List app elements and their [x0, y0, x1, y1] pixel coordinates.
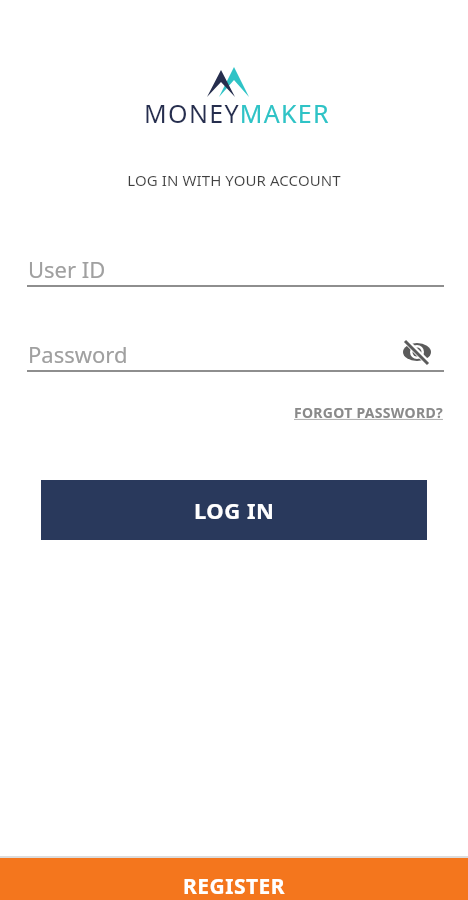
- staticText: Password: [28, 339, 128, 369]
- button[interactable]: FORGOT PASSWORD?: [0, 403, 468, 422]
- staticText: FORGOT PASSWORD?: [294, 403, 443, 422]
- button[interactable]: LOG IN: [41, 480, 427, 540]
- staticText: REGISTER: [183, 872, 286, 900]
- button[interactable]: REGISTER: [0, 858, 468, 900]
- button[interactable]: Password: [27, 335, 444, 372]
- button[interactable]: [401, 338, 433, 366]
- staticText: LOG IN WITH YOUR ACCOUNT: [0, 170, 468, 190]
- staticText: LOG IN: [194, 495, 275, 525]
- button[interactable]: User ID: [27, 250, 444, 287]
- staticText: User ID: [28, 254, 106, 284]
- staticText: MONEYMAKER: [3, 96, 468, 130]
